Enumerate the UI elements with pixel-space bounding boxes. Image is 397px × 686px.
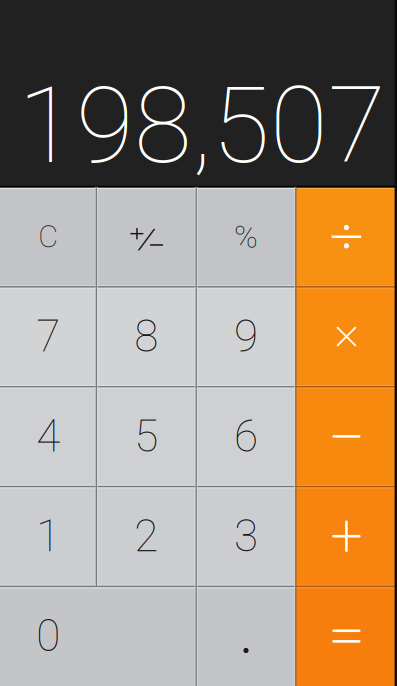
button[interactable]: 0 <box>0 586 196 686</box>
button[interactable]: 6 <box>196 386 296 486</box>
staticText: 8 <box>134 311 158 362</box>
staticText: 9 <box>234 311 258 362</box>
button[interactable]: Plus <box>296 486 397 586</box>
button[interactable]: 2 <box>96 486 196 586</box>
button[interactable]: Decimal point <box>196 586 296 686</box>
staticText: 198,507 <box>18 64 386 188</box>
button[interactable]: 9 <box>196 287 296 386</box>
button[interactable]: 7 <box>0 287 96 386</box>
button[interactable]: Plus minus <box>96 187 196 287</box>
staticText: 2 <box>134 510 158 562</box>
staticText: 7 <box>36 311 60 362</box>
button[interactable]: C <box>0 187 96 287</box>
button[interactable]: % <box>196 187 296 287</box>
button[interactable]: Equals <box>296 586 397 686</box>
staticText: 0 <box>36 610 60 662</box>
button[interactable]: Minus <box>296 386 397 486</box>
staticText: 3 <box>234 510 258 562</box>
staticText: % <box>234 218 258 255</box>
button[interactable]: 4 <box>0 386 96 486</box>
staticText: 5 <box>134 411 158 462</box>
staticText: 4 <box>36 411 60 462</box>
button[interactable]: 8 <box>96 287 196 386</box>
button[interactable]: Multiply <box>296 287 397 386</box>
staticText: C <box>38 219 58 255</box>
staticText: 1 <box>36 510 60 562</box>
button[interactable]: 1 <box>0 486 96 586</box>
button[interactable]: Divide <box>296 187 397 287</box>
staticText: 6 <box>234 411 258 462</box>
button[interactable]: 3 <box>196 486 296 586</box>
button[interactable]: 5 <box>96 386 196 486</box>
